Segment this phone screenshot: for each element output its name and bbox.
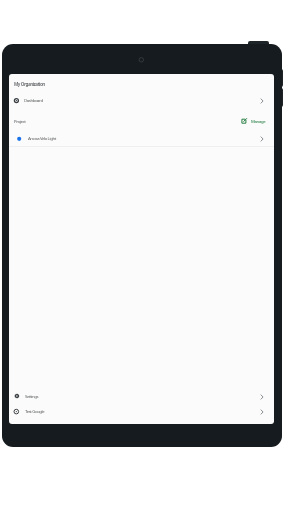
button[interactable]: Manage xyxy=(238,116,270,126)
staticText: Test Google xyxy=(25,408,45,414)
staticText: Dashboard xyxy=(24,97,43,103)
button[interactable]: Settings xyxy=(9,390,274,402)
staticText: Manage xyxy=(251,118,266,124)
button[interactable]: Test Google xyxy=(9,405,274,418)
button[interactable]: Arcosa Velo Light xyxy=(9,132,274,145)
staticText: Settings xyxy=(25,393,39,399)
button[interactable]: Dashboard xyxy=(9,94,274,106)
staticText: My Organization xyxy=(14,81,45,87)
staticText: Arcosa Velo Light xyxy=(28,135,56,141)
staticText: Project xyxy=(14,118,26,124)
